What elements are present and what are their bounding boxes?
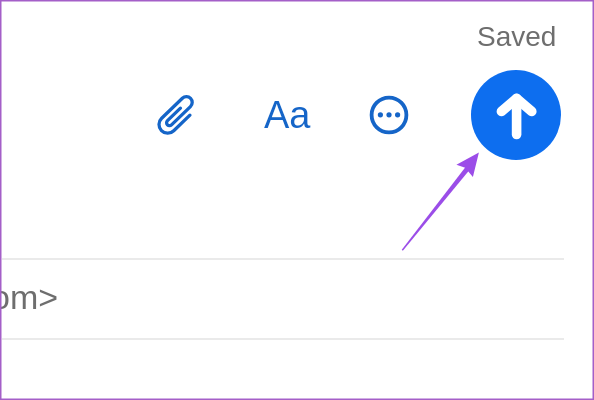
staticText: om> <box>0 278 59 316</box>
button[interactable]: Aa <box>264 94 311 136</box>
button[interactable]: Send <box>471 70 561 160</box>
staticText: Saved <box>477 21 557 52</box>
staticText: Aa <box>264 94 311 136</box>
button[interactable]: More options <box>369 95 409 135</box>
button[interactable]: Attach file <box>139 96 197 154</box>
